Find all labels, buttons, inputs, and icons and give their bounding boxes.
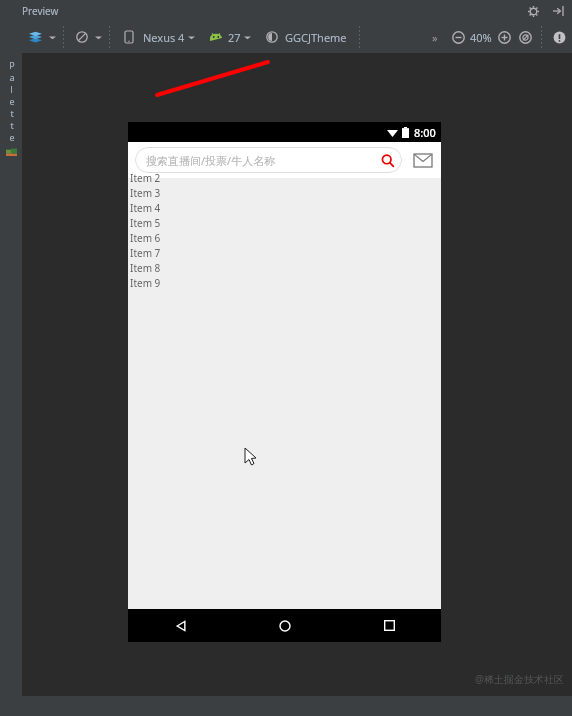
button[interactable]: Design mode (24, 26, 46, 48)
staticText: 搜索直播间/投票/牛人名称 (146, 153, 276, 168)
staticText: Item 8 (130, 261, 161, 275)
staticText: Item 2 (130, 171, 161, 185)
staticText: P (9, 59, 15, 71)
button[interactable]: 27 (206, 29, 253, 45)
staticText: 27 (228, 30, 241, 45)
button[interactable]: Back (128, 609, 233, 642)
staticText: Item 3 (130, 186, 161, 200)
button[interactable]: Settings (524, 2, 542, 20)
staticText: Item 4 (130, 201, 161, 215)
staticText: 40% (470, 30, 492, 45)
button[interactable]: Item 3 (128, 185, 441, 200)
button[interactable]: Issues (550, 28, 568, 46)
button[interactable]: Item 6 (128, 230, 441, 245)
staticText: t (10, 119, 14, 131)
staticText: e (9, 95, 15, 107)
button[interactable]: Zoom in (495, 28, 513, 46)
staticText: Item 6 (130, 231, 161, 245)
button[interactable]: Zoom to fit (516, 28, 534, 46)
staticText: GGCJTheme (285, 30, 347, 45)
staticText: Item 7 (130, 246, 161, 260)
button[interactable]: Item 8 (128, 260, 441, 275)
staticText: l (10, 83, 13, 95)
staticText: 8:00 (414, 125, 436, 140)
staticText: Item 5 (130, 216, 161, 230)
staticText: a (9, 71, 15, 83)
button[interactable]: GGCJTheme (262, 29, 349, 45)
button[interactable]: Home (233, 609, 337, 642)
button[interactable]: More actions (427, 29, 443, 45)
button[interactable]: Item 4 (128, 200, 441, 215)
button[interactable]: Nexus 4 (118, 28, 197, 46)
button[interactable]: Item 9 (128, 275, 441, 290)
button[interactable]: Messages (412, 149, 434, 171)
staticText: e (9, 131, 15, 143)
button[interactable]: Item 5 (128, 215, 441, 230)
staticText: Preview (22, 4, 59, 18)
button[interactable]: Item 2 (128, 170, 441, 185)
button[interactable]: Recents (337, 609, 441, 642)
button[interactable]: 搜索直播间/投票/牛人名称 (135, 147, 402, 173)
staticText: » (432, 30, 438, 45)
button[interactable]: Orientation (72, 27, 92, 47)
button[interactable]: Item 7 (128, 245, 441, 260)
button[interactable]: Search (379, 152, 396, 169)
button[interactable]: Zoom out (449, 28, 467, 46)
button[interactable]: Hide (550, 3, 566, 19)
staticText: @稀土掘金技术社区 (475, 672, 564, 686)
staticText: Nexus 4 (143, 30, 185, 45)
staticText: t (10, 107, 14, 119)
staticText: Item 9 (130, 276, 161, 290)
